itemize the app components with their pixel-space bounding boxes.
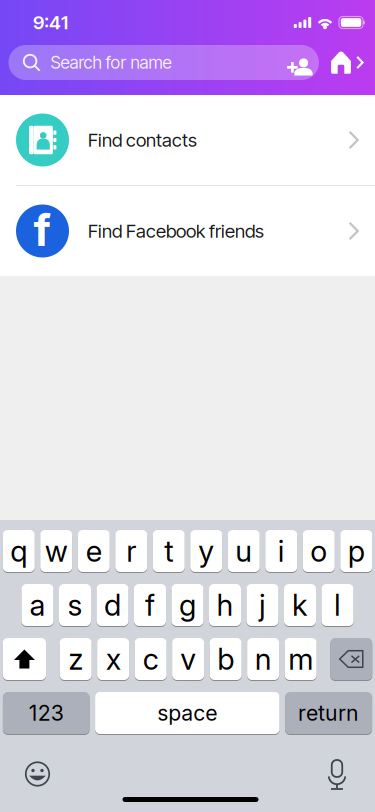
- button[interactable]: Home: [330, 50, 364, 74]
- staticText: y: [198, 533, 214, 569]
- button[interactable]: b: [210, 637, 242, 680]
- button[interactable]: r: [115, 529, 147, 572]
- button[interactable]: p: [340, 529, 372, 572]
- button[interactable]: Shift: [3, 637, 46, 680]
- button[interactable]: space: [95, 691, 280, 734]
- button[interactable]: s: [59, 583, 91, 626]
- staticText: r: [126, 533, 136, 569]
- staticText: s: [67, 587, 82, 623]
- staticText: b: [217, 641, 234, 677]
- staticText: k: [292, 587, 308, 623]
- button[interactable]: l: [321, 583, 353, 626]
- button[interactable]: k: [284, 583, 316, 626]
- button[interactable]: e: [78, 529, 110, 572]
- staticText: m: [288, 641, 313, 677]
- staticText: z: [68, 641, 83, 677]
- button[interactable]: x: [97, 637, 129, 680]
- staticText: g: [179, 587, 196, 623]
- staticText: Find Facebook friends: [88, 220, 264, 242]
- button[interactable]: q: [3, 529, 35, 572]
- button[interactable]: Add contact: [283, 54, 309, 71]
- button[interactable]: 123: [3, 691, 90, 734]
- staticText: 123: [29, 700, 64, 726]
- staticText: return: [298, 700, 359, 726]
- staticText: e: [86, 533, 102, 569]
- staticText: h: [216, 587, 233, 623]
- staticText: w: [45, 533, 68, 569]
- button[interactable]: o: [303, 529, 335, 572]
- button[interactable]: j: [246, 583, 278, 626]
- staticText: f: [145, 587, 155, 623]
- button[interactable]: m: [285, 637, 317, 680]
- staticText: u: [235, 533, 252, 569]
- staticText: f: [33, 203, 51, 257]
- staticText: v: [180, 641, 196, 677]
- staticText: j: [259, 587, 266, 623]
- staticText: c: [143, 641, 159, 677]
- button[interactable]: g: [171, 583, 203, 626]
- staticText: Search for name: [50, 52, 171, 73]
- button[interactable]: i: [265, 529, 297, 572]
- staticText: t: [164, 533, 173, 569]
- button[interactable]: Find contacts: [0, 95, 375, 185]
- button[interactable]: f: [134, 583, 166, 626]
- button[interactable]: t: [153, 529, 185, 572]
- staticText: a: [29, 587, 45, 623]
- button[interactable]: v: [172, 637, 204, 680]
- button[interactable]: z: [60, 637, 92, 680]
- button[interactable]: c: [135, 637, 167, 680]
- staticText: space: [157, 700, 217, 726]
- staticText: 9:41: [33, 11, 68, 34]
- staticText: n: [255, 641, 272, 677]
- button[interactable]: y: [190, 529, 222, 572]
- button[interactable]: n: [247, 637, 279, 680]
- button[interactable]: return: [285, 691, 372, 734]
- button[interactable]: h: [209, 583, 241, 626]
- staticText: o: [310, 533, 327, 569]
- staticText: d: [104, 587, 121, 623]
- staticText: q: [10, 533, 27, 569]
- staticText: i: [278, 533, 285, 569]
- button[interactable]: u: [228, 529, 260, 572]
- staticText: Find contacts: [88, 129, 197, 151]
- button[interactable]: Delete: [330, 637, 372, 680]
- button[interactable]: w: [40, 529, 72, 572]
- staticText: x: [106, 641, 121, 677]
- button[interactable]: d: [96, 583, 128, 626]
- button[interactable]: a: [21, 583, 53, 626]
- button[interactable]: Emoji keyboard: [24, 760, 51, 787]
- staticText: p: [348, 533, 365, 569]
- button[interactable]: f: [0, 186, 375, 276]
- button[interactable]: Dictation: [326, 760, 348, 788]
- staticText: l: [334, 587, 341, 623]
